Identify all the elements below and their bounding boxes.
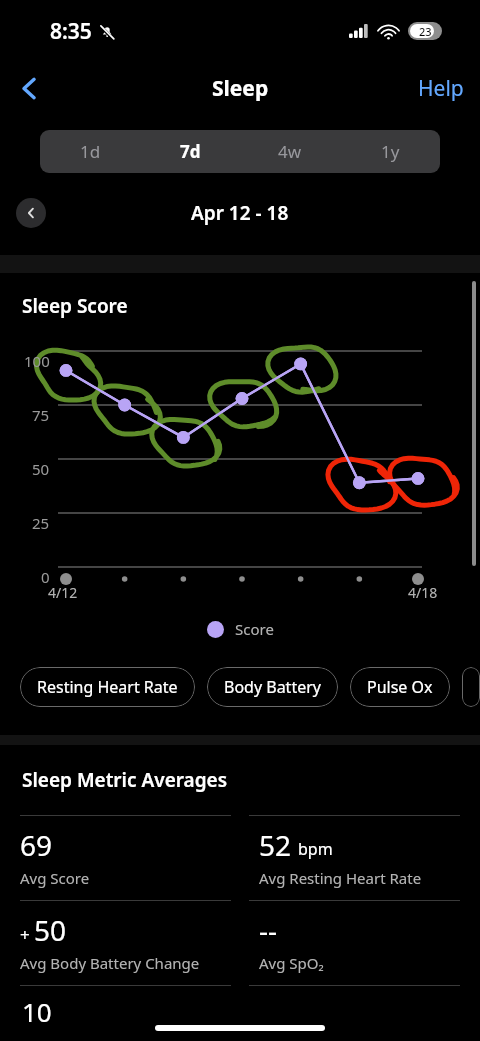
staticText: 50 [32, 459, 50, 479]
staticText: 4w [278, 140, 302, 163]
staticText: 4/18 [408, 583, 438, 602]
button[interactable]: -- [259, 911, 480, 973]
button[interactable]: 52 [259, 826, 480, 888]
staticText: Avg Resting Heart Rate [259, 868, 422, 888]
staticText: 69 [20, 826, 53, 864]
staticText: 4/12 [48, 583, 78, 602]
staticText: + [20, 923, 30, 946]
button[interactable]: + [20, 911, 241, 973]
staticText: Help [418, 74, 464, 103]
staticText: 1y [381, 140, 400, 163]
staticText: 100 [24, 351, 50, 371]
button[interactable]: Body Battery [207, 667, 338, 707]
staticText: Avg Body Battery Change [20, 953, 200, 973]
staticText: Sleep Metric Averages [22, 767, 228, 793]
staticText: 8:35 [50, 17, 92, 46]
staticText: Body Battery [224, 676, 321, 698]
staticText: 52 [259, 826, 292, 864]
staticText: 0 [41, 567, 50, 587]
button[interactable]: 1d [40, 130, 140, 173]
button[interactable]: Back [6, 65, 52, 111]
staticText: Avg Score [20, 868, 90, 888]
staticText: 1d [80, 140, 101, 163]
staticText: 10 [22, 994, 52, 1029]
staticText: Sleep Score [22, 293, 128, 319]
button[interactable]: More metrics [462, 667, 480, 707]
button[interactable]: 7d [140, 130, 240, 173]
staticText: -- [259, 911, 278, 949]
button[interactable]: Pulse Ox [350, 667, 450, 707]
staticText: bpm [298, 838, 333, 860]
button[interactable]: 69 [20, 826, 241, 888]
staticText: 50 [34, 911, 67, 949]
button[interactable]: 4w [240, 130, 340, 173]
staticText: 7d [180, 140, 201, 163]
staticText: 25 [32, 513, 50, 533]
staticText: 23 [419, 24, 432, 39]
button[interactable]: Help [412, 66, 470, 111]
staticText: Avg SpO₂ [259, 953, 324, 973]
staticText: Sleep [212, 74, 269, 103]
staticText: Resting Heart Rate [37, 676, 178, 698]
staticText: Pulse Ox [367, 676, 433, 698]
staticText: 75 [32, 405, 50, 425]
staticText: Score [235, 619, 274, 639]
button[interactable]: 1y [340, 130, 440, 173]
staticText: Apr 12 - 18 [191, 200, 289, 226]
button[interactable]: Resting Heart Rate [20, 667, 195, 707]
button[interactable]: Previous week [16, 198, 46, 228]
